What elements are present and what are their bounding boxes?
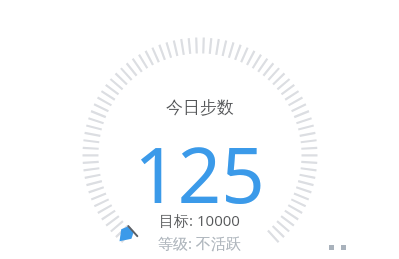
staticText: 目标: 10000 — [159, 210, 240, 230]
staticText: 125 — [134, 122, 265, 226]
staticText: 今日步数 — [166, 97, 234, 118]
staticText: 等级: 不活跃 — [158, 233, 241, 253]
button[interactable]: More — [329, 245, 346, 250]
